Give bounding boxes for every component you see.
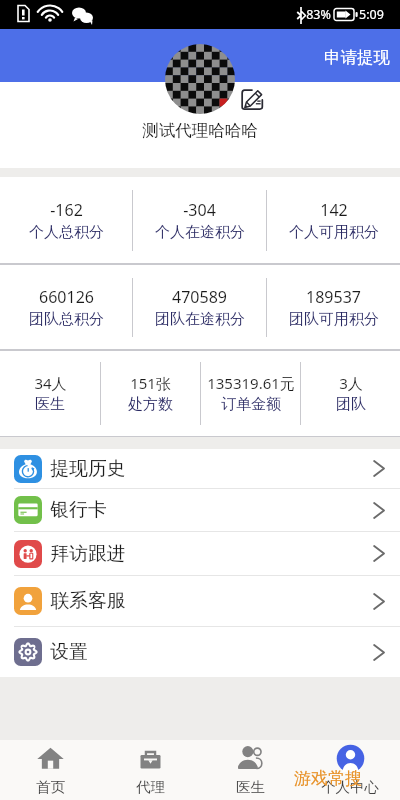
staticText: 拜访跟进 [50, 542, 126, 566]
button[interactable]: 个人中心 [300, 740, 400, 800]
staticText: 订单金额 [221, 395, 281, 414]
staticText: 代理 [136, 778, 165, 796]
button[interactable]: 34人 [0, 351, 100, 436]
button[interactable]: 142 [267, 177, 400, 263]
staticText: 个人可用积分 [289, 223, 379, 242]
staticText: 5:09 [359, 6, 384, 23]
button[interactable]: 医生 [200, 740, 300, 800]
button[interactable]: 189537 [267, 265, 400, 349]
staticText: 团队 [336, 395, 366, 414]
staticText: 银行卡 [50, 498, 107, 522]
staticText: 医生 [35, 395, 65, 414]
button[interactable]: 提现历史 [0, 449, 400, 488]
staticText: 个人中心 [321, 778, 379, 796]
staticText: 151张 [130, 373, 171, 393]
staticText: 设置 [50, 640, 88, 664]
staticText: 游戏常搜 [294, 768, 362, 789]
staticText: 团队总积分 [29, 310, 104, 329]
staticText: 3人 [339, 373, 363, 393]
staticText: 测试代理哈哈哈 [142, 120, 258, 141]
staticText: -304 [183, 199, 216, 221]
staticText: 医生 [236, 778, 265, 796]
staticText: 首页 [36, 778, 65, 796]
button[interactable]: 3人 [301, 351, 400, 436]
staticText: 申请提现 [324, 47, 390, 68]
staticText: -162 [50, 199, 83, 221]
staticText: 处方数 [128, 395, 173, 414]
button[interactable]: -162 [0, 177, 132, 263]
staticText: 团队可用积分 [289, 310, 379, 329]
staticText: 660126 [39, 286, 94, 308]
button[interactable]: 660126 [0, 265, 132, 349]
staticText: 提现历史 [50, 457, 126, 481]
staticText: 83% [306, 6, 331, 23]
button[interactable]: 银行卡 [0, 489, 400, 531]
staticText: 团队在途积分 [155, 310, 245, 329]
staticText: 联系客服 [50, 589, 126, 613]
button[interactable]: Avatar [165, 44, 235, 114]
staticText: 142 [320, 199, 348, 221]
button[interactable]: 拜访跟进 [0, 532, 400, 575]
staticText: 34人 [34, 373, 67, 393]
button[interactable]: 申请提现 [308, 39, 400, 76]
button[interactable]: 470589 [133, 265, 266, 349]
button[interactable]: 设置 [0, 627, 400, 677]
button[interactable]: 首页 [0, 740, 100, 800]
button[interactable]: Edit profile [240, 86, 264, 110]
staticText: 个人在途积分 [155, 223, 245, 242]
button[interactable]: 151张 [101, 351, 200, 436]
button[interactable]: 代理 [100, 740, 200, 800]
staticText: 个人总积分 [29, 223, 104, 242]
button[interactable]: -304 [133, 177, 266, 263]
staticText: 470589 [172, 286, 227, 308]
staticText: 135319.61元 [207, 373, 295, 393]
button[interactable]: 135319.61元 [201, 351, 300, 436]
button[interactable]: 联系客服 [0, 576, 400, 626]
staticText: 189537 [306, 286, 361, 308]
